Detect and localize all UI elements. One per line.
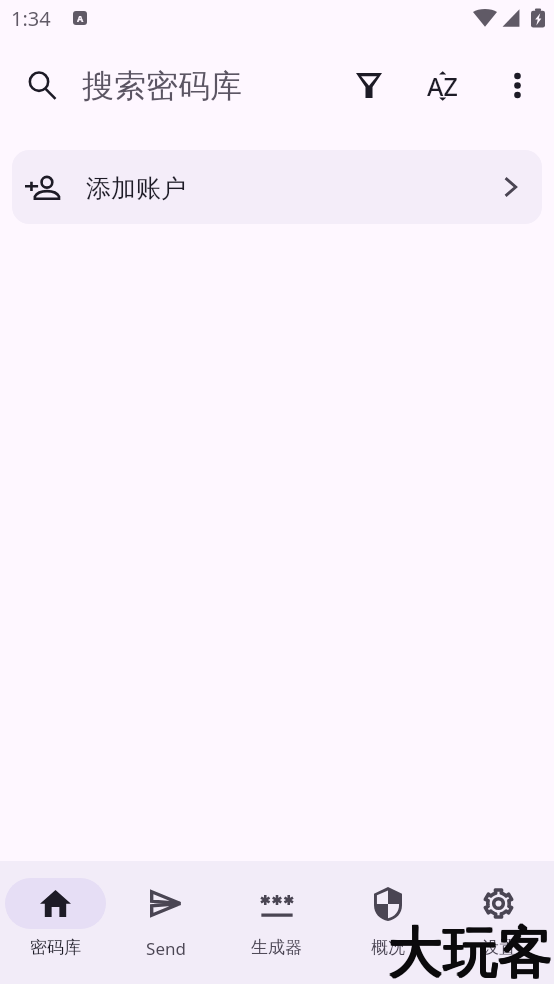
staticText: 大玩客 (389, 919, 554, 984)
staticText: 大玩客 (388, 917, 553, 984)
staticText: 大玩客 (388, 918, 553, 984)
staticText: 搜索密码库 (82, 66, 242, 106)
button[interactable]: Filter (347, 63, 391, 107)
staticText: 大玩客 (387, 918, 552, 984)
staticText: 大玩客 (387, 917, 552, 984)
staticText: 1:34 (11, 5, 51, 32)
staticText: 设置 (482, 937, 516, 958)
staticText: 大玩客 (387, 919, 552, 984)
button[interactable]: 设置 (443, 861, 554, 984)
button[interactable]: 生成器 (221, 861, 332, 984)
button[interactable]: Sort A to Z (420, 64, 464, 108)
staticText: 大玩客 (389, 918, 554, 984)
staticText: 概况 (371, 937, 405, 958)
staticText: 添加账户 (86, 173, 186, 204)
staticText: 密码库 (30, 937, 81, 958)
button[interactable]: 添加账户 (12, 150, 542, 224)
staticText: 生成器 (251, 937, 302, 958)
button[interactable]: 概况 (332, 861, 443, 984)
staticText: 大玩客 (389, 917, 554, 984)
staticText: 大玩客 (388, 919, 553, 984)
button[interactable]: Search (20, 63, 64, 107)
staticText: A (77, 12, 84, 24)
staticText: AZ (427, 69, 458, 99)
staticText: Send (146, 937, 186, 960)
button[interactable]: More options (495, 63, 539, 107)
button[interactable]: 密码库 (0, 861, 110, 984)
button[interactable]: Send (110, 861, 221, 984)
